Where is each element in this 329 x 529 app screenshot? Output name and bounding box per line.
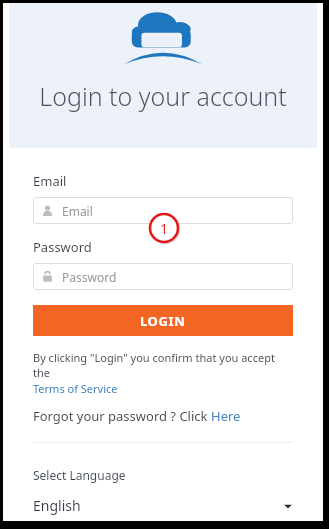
button[interactable]: Terms of Service: [33, 381, 118, 396]
staticText: Password: [33, 238, 92, 256]
staticText: By clicking "Login" you confirm that you…: [33, 350, 293, 380]
staticText: Password: [62, 269, 117, 285]
staticText: Select Language: [33, 467, 126, 483]
staticText: Email: [62, 203, 93, 219]
staticText: LOGIN: [140, 312, 186, 330]
staticText: Here: [211, 407, 241, 425]
button[interactable]: English: [33, 496, 293, 521]
staticText: Email: [33, 172, 67, 190]
button[interactable]: Here: [211, 407, 241, 425]
staticText: English: [33, 496, 81, 515]
staticText: Login to your account: [39, 79, 287, 113]
staticText: Forgot your password ? Click: [33, 407, 211, 425]
staticText: Terms of Service: [33, 381, 118, 396]
button[interactable]: Email: [33, 197, 293, 224]
button[interactable]: LOGIN: [33, 305, 293, 336]
button[interactable]: Password: [33, 263, 293, 290]
staticText: 1: [160, 219, 169, 238]
